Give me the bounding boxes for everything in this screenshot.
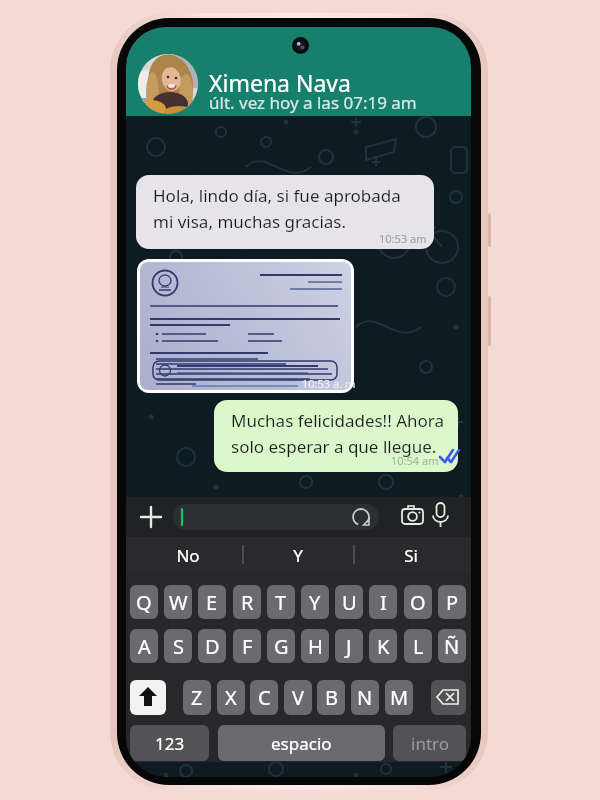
button[interactable]: C [250,680,278,715]
button[interactable]: T [267,585,295,619]
button[interactable]: 123 [130,725,209,761]
button[interactable]: W [164,585,192,619]
staticText: R [241,589,254,616]
staticText: No [176,544,200,567]
staticText: mi visa, muchas gracias. [153,210,347,233]
staticText: 123 [155,732,185,755]
button[interactable]: L [404,629,432,663]
staticText: F [242,633,253,660]
button[interactable]: Y [258,543,338,567]
button[interactable]: D [198,629,226,663]
staticText: Z [191,684,203,711]
staticText: U [342,589,357,616]
button[interactable]: intro [393,725,466,761]
staticText: G [274,633,289,660]
staticText: Y [293,544,303,567]
button[interactable]: Z [183,680,211,715]
button[interactable]: G [267,629,295,663]
staticText: C [258,684,271,711]
staticText: L [413,633,424,660]
button[interactable] [130,680,166,715]
staticText: Q [136,589,152,616]
button[interactable]: I [369,585,397,619]
staticText: X [225,684,237,711]
button[interactable] [173,504,379,530]
button[interactable]: O [404,585,432,619]
button[interactable] [431,680,466,715]
staticText: H [308,633,323,660]
staticText: Ñ [444,633,460,660]
staticText: 10:53 am [379,231,427,246]
staticText: Muchas felicidades!! Ahora [231,409,445,432]
staticText: W [169,589,188,616]
staticText: K [377,633,390,660]
button[interactable]: P [438,585,466,619]
staticText: Y [309,589,321,616]
staticText: I [380,589,387,616]
button[interactable]: Y [301,585,329,619]
button[interactable]: No [148,543,228,567]
staticText: P [446,589,459,616]
staticText: solo esperar a que llegue. [231,435,437,458]
button[interactable]: X [217,680,245,715]
staticText: espacio [271,732,332,755]
button[interactable]: K [369,629,397,663]
button[interactable]: V [284,680,312,715]
staticText: D [205,633,220,660]
button[interactable]: N [351,680,379,715]
staticText: M [390,684,409,711]
button[interactable]: F [233,629,261,663]
button[interactable]: A [130,629,158,663]
button[interactable] [214,400,458,472]
staticText: O [410,589,426,616]
staticText: Hola, lindo día, si fue aprobada [153,184,401,207]
button[interactable] [126,27,471,116]
button[interactable]: J [335,629,363,663]
staticText: T [275,589,287,616]
button[interactable]: M [385,680,413,715]
button[interactable]: H [301,629,329,663]
staticText: J [346,633,352,660]
staticText: N [357,684,373,711]
staticText: E [206,589,218,616]
staticText: S [173,633,184,660]
staticText: Si [404,544,418,567]
button[interactable]: B [317,680,345,715]
staticText: 10:54 am [391,453,439,468]
button[interactable]: R [233,585,261,619]
staticText: Ximena Nava [209,67,351,98]
button[interactable]: Q [130,585,158,619]
staticText: 10:53 a. m [302,376,356,391]
staticText: A [138,633,151,660]
staticText: últ. vez hoy a las 07:19 am [209,91,417,114]
button[interactable] [138,54,198,114]
button[interactable] [136,175,434,249]
button[interactable]: E [198,585,226,619]
staticText: B [325,684,338,711]
staticText: V [292,684,304,711]
button[interactable]: espacio [218,725,385,761]
staticText: intro [411,732,449,755]
button[interactable]: Ñ [438,629,466,663]
button[interactable]: Si [371,543,451,567]
button[interactable]: S [164,629,192,663]
button[interactable]: U [335,585,363,619]
button[interactable] [137,259,354,393]
